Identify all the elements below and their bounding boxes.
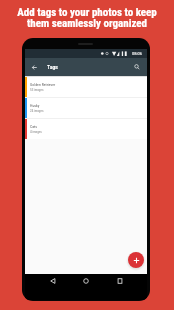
- button[interactable]: Recents: [114, 275, 126, 287]
- staticText: 4 images: [30, 130, 42, 134]
- button[interactable]: Husky: [25, 98, 147, 118]
- button[interactable]: Add tag: [128, 252, 144, 268]
- staticText: Cats: [30, 124, 37, 129]
- staticText: Tags: [47, 64, 58, 70]
- button[interactable]: Home: [80, 275, 92, 287]
- button[interactable]: Search: [128, 58, 146, 76]
- staticText: 24 images: [30, 109, 44, 113]
- staticText: Husky: [30, 103, 40, 108]
- staticText: Add tags to your photos to keep them sea…: [17, 6, 157, 29]
- button[interactable]: Back: [47, 275, 59, 287]
- staticText: 08:06: [132, 51, 142, 56]
- button[interactable]: Cats: [25, 119, 147, 139]
- button[interactable]: Back: [25, 58, 43, 76]
- staticText: 53 images: [30, 88, 44, 92]
- staticText: Golden Retriever: [30, 82, 56, 87]
- button[interactable]: Golden Retriever: [25, 77, 147, 97]
